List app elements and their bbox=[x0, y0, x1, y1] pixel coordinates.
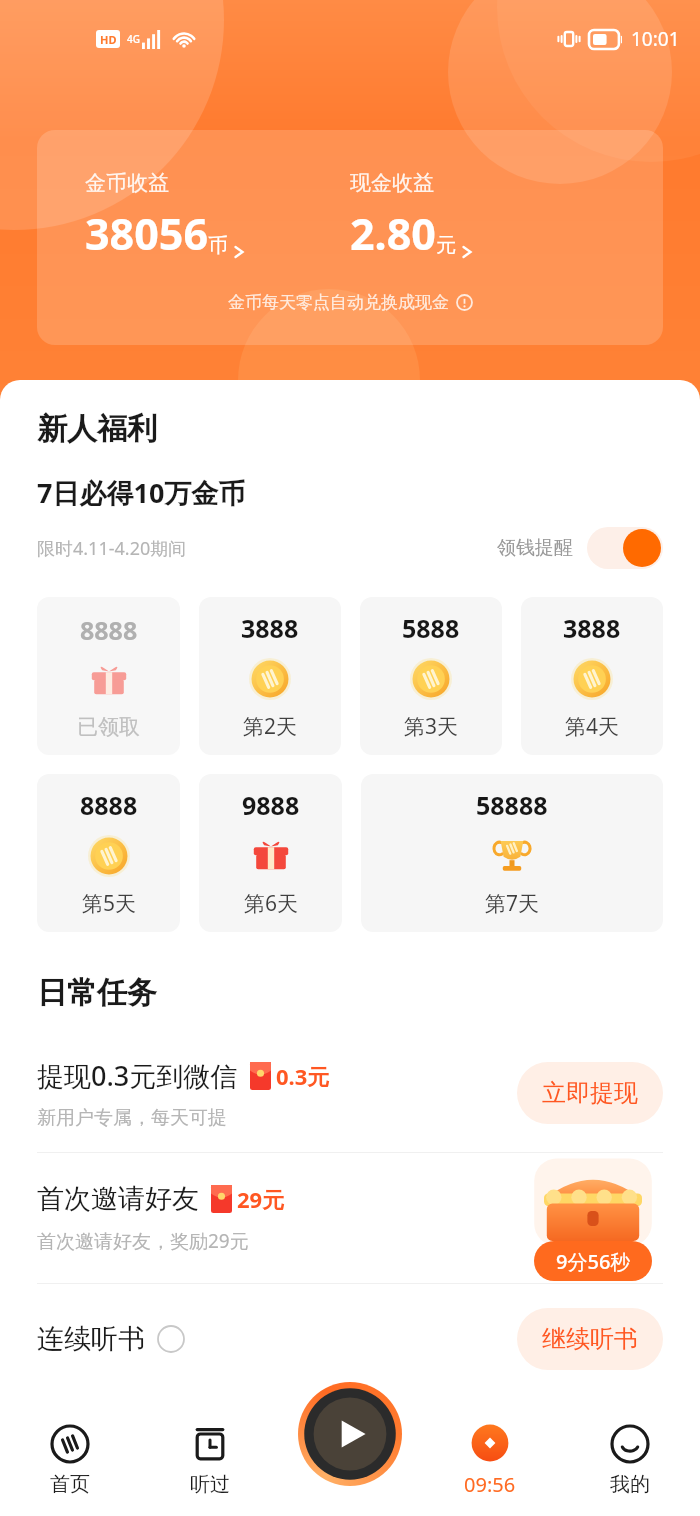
staticText: 首次邀请好友，奖励29元 bbox=[37, 1228, 249, 1254]
staticText: 3888 bbox=[563, 611, 621, 645]
staticText: 5888 bbox=[402, 611, 460, 645]
staticText: 新用户专属，每天可提 bbox=[37, 1106, 227, 1130]
staticText: 连续听书 bbox=[37, 1322, 145, 1356]
button[interactable]: 提现0.3元到微信 bbox=[37, 1034, 663, 1152]
staticText: 元 bbox=[436, 233, 456, 258]
button[interactable]: 9888 bbox=[199, 774, 342, 932]
staticText: 限时4.11-4.20期间 bbox=[37, 536, 187, 561]
staticText: 10:01 bbox=[631, 26, 680, 52]
staticText: 币 bbox=[208, 233, 228, 258]
button[interactable]: 58888 bbox=[361, 774, 663, 932]
staticText: 立即提现 bbox=[542, 1078, 638, 1108]
staticText: 日常任务 bbox=[37, 974, 157, 1012]
staticText: 第6天 bbox=[244, 889, 299, 918]
staticText: 已领取 bbox=[77, 714, 140, 740]
button[interactable]: 8888 bbox=[37, 774, 180, 932]
staticText: 第7天 bbox=[485, 889, 540, 918]
staticText: 58888 bbox=[476, 788, 548, 822]
staticText: 0.3元 bbox=[276, 1061, 330, 1091]
staticText: 8888 bbox=[80, 788, 138, 822]
button[interactable]: 3888 bbox=[199, 597, 341, 755]
button[interactable]: 5888 bbox=[360, 597, 502, 755]
staticText: 09:56 bbox=[464, 1471, 516, 1498]
staticText: HD bbox=[100, 32, 117, 47]
staticText: 7日必得10万金币 bbox=[37, 474, 246, 511]
staticText: 金币收益 bbox=[85, 170, 169, 196]
staticText: 3888 bbox=[241, 611, 299, 645]
button[interactable]: 听过 bbox=[140, 1404, 280, 1516]
staticText: 首次邀请好友 bbox=[37, 1182, 199, 1216]
button[interactable]: 立即提现 bbox=[517, 1062, 663, 1124]
button[interactable]: 我的 bbox=[560, 1404, 700, 1516]
button[interactable]: 现金收益 bbox=[350, 170, 663, 263]
button[interactable]: 首页 bbox=[0, 1404, 140, 1516]
button[interactable]: 09:56 bbox=[420, 1404, 560, 1516]
staticText: 38056 bbox=[85, 204, 208, 263]
button[interactable]: 首次邀请好友 bbox=[37, 1153, 663, 1283]
staticText: 首页 bbox=[50, 1472, 90, 1497]
button[interactable]: Play current audiobook bbox=[298, 1382, 402, 1486]
staticText: 8888 bbox=[80, 613, 138, 647]
button[interactable]: 金币每天零点自动兑换成现金 bbox=[228, 292, 473, 313]
button[interactable]: 连续听书 bbox=[37, 1284, 663, 1394]
staticText: 第3天 bbox=[404, 712, 459, 741]
staticText: 第2天 bbox=[243, 712, 298, 741]
staticText: 金币每天零点自动兑换成现金 bbox=[228, 292, 449, 313]
staticText: 2.80 bbox=[350, 204, 436, 263]
button[interactable]: 3888 bbox=[521, 597, 663, 755]
staticText: 9888 bbox=[242, 788, 300, 822]
staticText: 现金收益 bbox=[350, 170, 434, 196]
staticText: 第4天 bbox=[565, 712, 620, 741]
button[interactable]: 继续听书 bbox=[517, 1308, 663, 1370]
staticText: 9分56秒 bbox=[556, 1248, 631, 1275]
staticText: 29元 bbox=[237, 1184, 285, 1214]
staticText: 我的 bbox=[610, 1472, 650, 1497]
staticText: 领钱提醒 bbox=[497, 536, 573, 560]
button[interactable]: 金币收益 bbox=[85, 170, 350, 263]
staticText: 听过 bbox=[190, 1472, 230, 1497]
staticText: 4G bbox=[127, 32, 140, 46]
button[interactable]: 8888 bbox=[37, 597, 180, 755]
button[interactable]: 9分56秒 bbox=[523, 1156, 663, 1281]
staticText: 新人福利 bbox=[37, 410, 157, 448]
staticText: 提现0.3元到微信 bbox=[37, 1057, 238, 1094]
staticText: 继续听书 bbox=[542, 1324, 638, 1354]
button[interactable]: 领钱提醒 bbox=[497, 527, 663, 569]
staticText: 第5天 bbox=[82, 889, 137, 918]
